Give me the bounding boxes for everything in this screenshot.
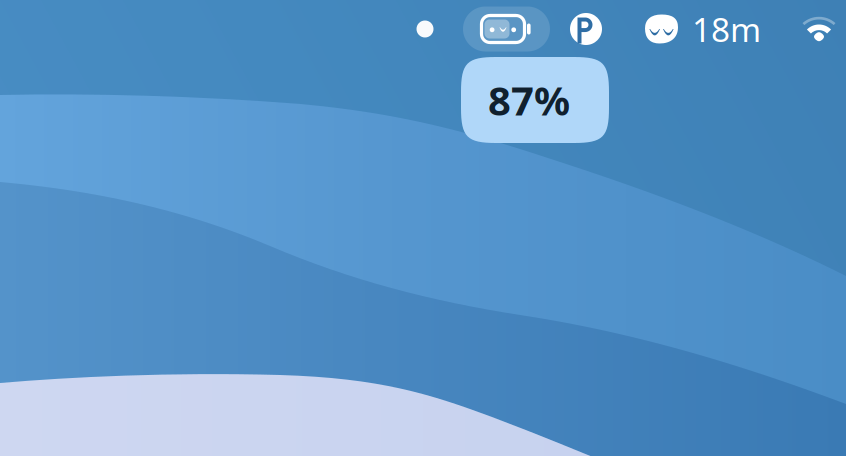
staticText: 87% (488, 73, 570, 126)
button[interactable]: Screen recording (410, 0, 440, 58)
button[interactable]: Wi-Fi (797, 0, 841, 58)
button[interactable]: PayPal (571, 0, 601, 58)
button[interactable]: 18m (645, 0, 761, 58)
staticText: 18m (692, 7, 761, 51)
button[interactable]: Battery (463, 6, 550, 51)
